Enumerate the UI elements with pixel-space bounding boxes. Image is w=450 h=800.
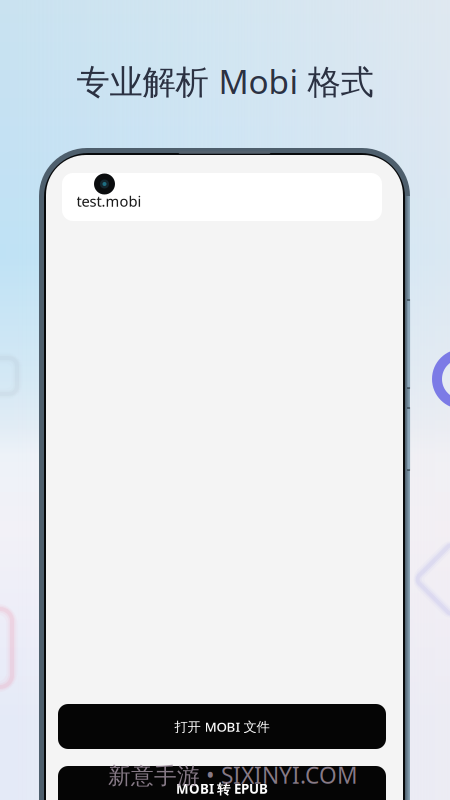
staticText: 打开 MOBI 文件: [174, 718, 269, 735]
staticText: test.mobi: [76, 191, 141, 211]
staticText: MOBI 转 EPUB: [176, 780, 268, 797]
button[interactable]: 打开 MOBI 文件: [58, 704, 386, 749]
staticText: 新意手游 • SIXINYI.COM: [108, 760, 358, 790]
button[interactable]: MOBI 转 EPUB: [58, 766, 386, 800]
staticText: 专业解析 Mobi 格式: [76, 59, 373, 103]
